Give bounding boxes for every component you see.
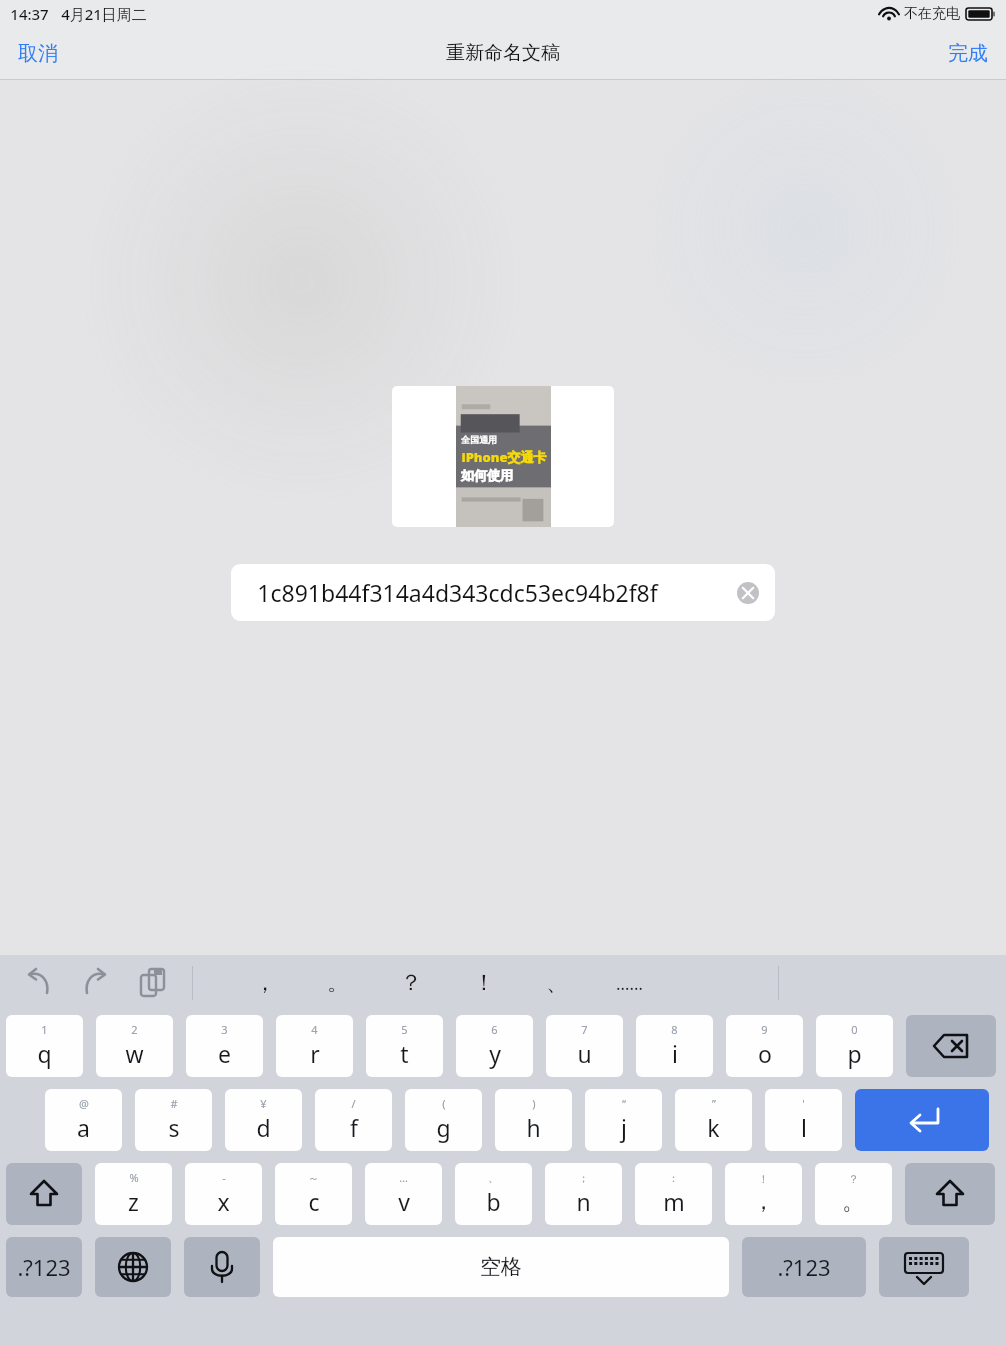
staticText: l — [801, 1112, 807, 1143]
staticText: 4月21日周二 — [61, 4, 147, 24]
staticText: z — [128, 1186, 139, 1217]
button[interactable]: 。 — [301, 960, 374, 1006]
button[interactable]: 取消 — [0, 33, 76, 74]
button[interactable]: ) — [495, 1089, 572, 1151]
button[interactable]: ～ — [275, 1163, 352, 1225]
button[interactable]: Shift — [6, 1163, 82, 1225]
staticText: 如何使用 — [461, 467, 513, 483]
button[interactable]: % — [95, 1163, 172, 1225]
button[interactable]: 空格 — [273, 1237, 729, 1297]
staticText: n — [576, 1186, 591, 1217]
button[interactable]: .?123 — [742, 1237, 866, 1297]
button[interactable]: 完成 — [930, 33, 1006, 74]
button[interactable]: Redo — [74, 961, 118, 1005]
staticText: .?123 — [777, 1252, 831, 1282]
staticText: 、 — [488, 1171, 499, 1185]
staticText: 4 — [311, 1022, 318, 1037]
staticText: ， — [254, 969, 276, 997]
button[interactable]: 8 — [636, 1015, 713, 1077]
button[interactable]: Switch keyboard — [95, 1237, 171, 1297]
staticText: 9 — [761, 1022, 768, 1037]
staticText: ～ — [308, 1171, 319, 1185]
button[interactable]: 、 — [520, 960, 593, 1006]
staticText: 、 — [546, 969, 568, 997]
button[interactable]: ( — [405, 1089, 482, 1151]
button[interactable]: 1 — [6, 1015, 83, 1077]
button[interactable]: 1c891b44f314a4d343cdc53ec94b2f8f — [231, 564, 775, 621]
staticText: x — [217, 1186, 230, 1217]
staticText: 重新命名文稿 — [446, 41, 560, 65]
button[interactable]: 全国通用 — [392, 386, 614, 527]
button[interactable]: Return — [855, 1089, 989, 1151]
button[interactable]: Clear text — [735, 580, 761, 606]
staticText: 空格 — [480, 1254, 522, 1280]
staticText: ) — [532, 1096, 536, 1111]
staticText: - — [222, 1170, 226, 1185]
staticText: ！ — [473, 969, 495, 997]
staticText: 1 — [41, 1022, 48, 1037]
button[interactable]: / — [315, 1089, 392, 1151]
button[interactable]: Backspace — [906, 1015, 996, 1077]
button[interactable]: Shift — [905, 1163, 995, 1225]
staticText: ' — [802, 1096, 805, 1111]
staticText: r — [310, 1038, 320, 1069]
button[interactable]: Hide keyboard — [879, 1237, 969, 1297]
staticText: iPhone交通卡 — [461, 448, 547, 466]
button[interactable]: ？ — [374, 960, 447, 1006]
staticText: y — [489, 1038, 501, 1069]
button[interactable]: …… — [593, 960, 666, 1006]
button[interactable]: Paste — [130, 961, 174, 1005]
button[interactable]: 2 — [96, 1015, 173, 1077]
button[interactable]: 6 — [456, 1015, 533, 1077]
staticText: 3 — [221, 1022, 228, 1037]
button[interactable]: ； — [545, 1163, 622, 1225]
button[interactable]: ！ — [725, 1163, 802, 1225]
staticText: 取消 — [18, 41, 58, 66]
staticText: 。 — [327, 969, 349, 997]
button[interactable]: 9 — [726, 1015, 803, 1077]
staticText: g — [436, 1112, 451, 1143]
staticText: m — [663, 1186, 685, 1217]
button[interactable]: ， — [228, 960, 301, 1006]
button[interactable]: @ — [45, 1089, 122, 1151]
staticText: …… — [616, 972, 643, 995]
button[interactable]: ' — [765, 1089, 842, 1151]
button[interactable]: 、 — [455, 1163, 532, 1225]
staticText: ！ — [758, 1172, 769, 1186]
staticText: j — [621, 1112, 627, 1143]
button[interactable]: … — [365, 1163, 442, 1225]
staticText: 7 — [581, 1022, 588, 1037]
staticText: ； — [578, 1171, 589, 1185]
button[interactable]: ？ — [815, 1163, 892, 1225]
button[interactable]: .?123 — [6, 1237, 82, 1297]
staticText: f — [350, 1112, 358, 1143]
button[interactable]: 3 — [186, 1015, 263, 1077]
staticText: q — [37, 1038, 52, 1069]
staticText: ？ — [400, 969, 422, 997]
staticText: p — [847, 1038, 862, 1069]
staticText: h — [526, 1112, 541, 1143]
staticText: o — [758, 1038, 772, 1069]
staticText: e — [218, 1038, 231, 1069]
staticText: “ — [622, 1096, 626, 1111]
button[interactable]: Dictation — [184, 1237, 260, 1297]
staticText: 5 — [401, 1022, 408, 1037]
button[interactable]: ¥ — [225, 1089, 302, 1151]
button[interactable]: # — [135, 1089, 212, 1151]
button[interactable]: ： — [635, 1163, 712, 1225]
button[interactable]: - — [185, 1163, 262, 1225]
button[interactable]: “ — [585, 1089, 662, 1151]
button[interactable]: ” — [675, 1089, 752, 1151]
button[interactable]: Undo — [16, 961, 60, 1005]
staticText: ” — [712, 1096, 716, 1111]
staticText: ， — [752, 1187, 775, 1216]
staticText: ¥ — [260, 1096, 267, 1111]
button[interactable]: 0 — [816, 1015, 893, 1077]
button[interactable]: 4 — [276, 1015, 353, 1077]
staticText: 。 — [842, 1187, 865, 1216]
button[interactable]: 5 — [366, 1015, 443, 1077]
button[interactable]: 7 — [546, 1015, 623, 1077]
staticText: 全国通用 — [461, 434, 497, 445]
staticText: % — [129, 1170, 139, 1185]
button[interactable]: ！ — [447, 960, 520, 1006]
